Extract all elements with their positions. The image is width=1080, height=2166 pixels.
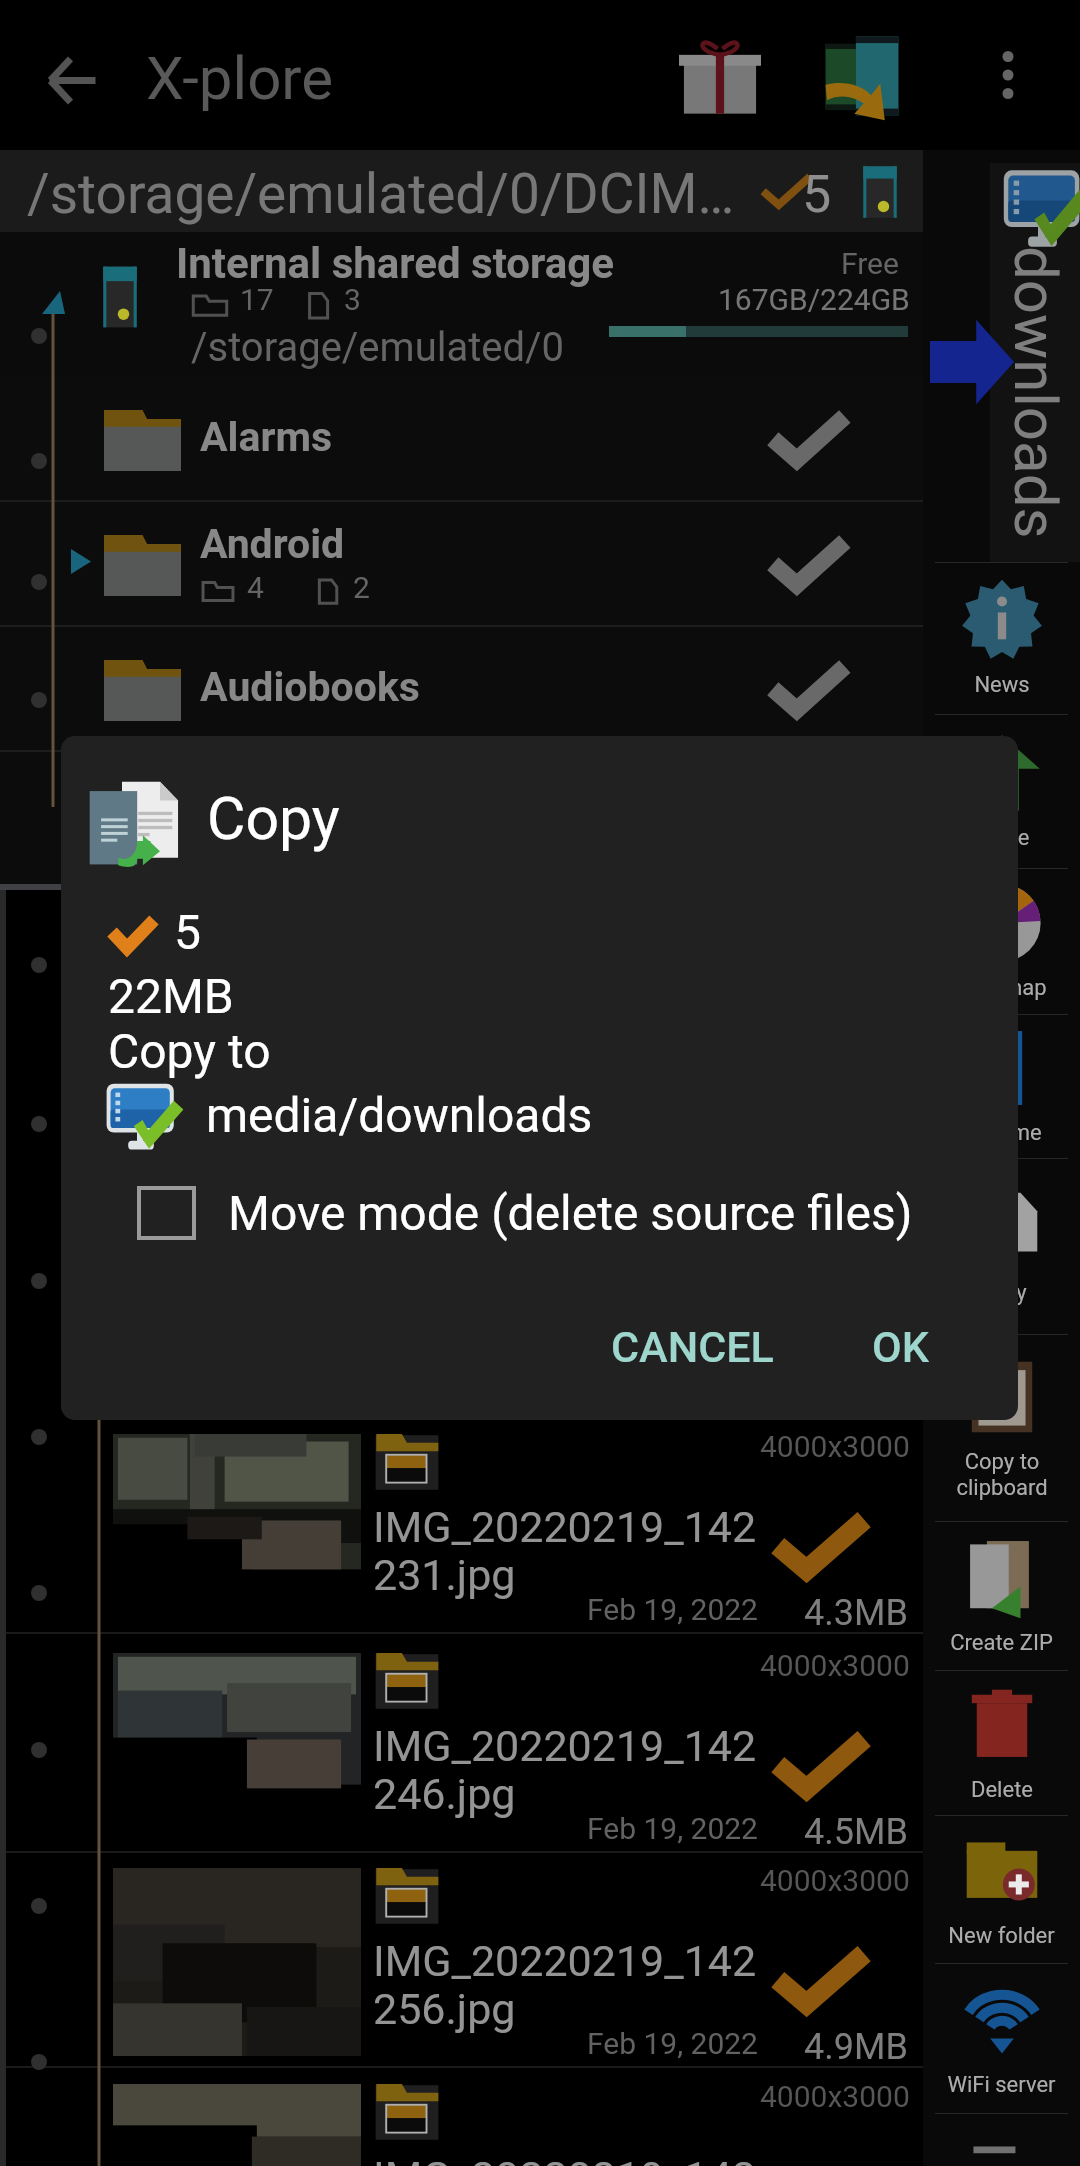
staticText: Move mode (delete source files)	[228, 1185, 913, 1241]
button[interactable]: Copy	[923, 1158, 1080, 1334]
button[interactable]: Create ZIP	[923, 1521, 1080, 1670]
staticText: Audiobooks	[200, 663, 420, 711]
staticText: 5	[802, 164, 832, 225]
button[interactable]: Transfer files	[797, 0, 927, 150]
button[interactable]: Gift	[655, 0, 785, 150]
button[interactable]: CANCEL	[581, 1300, 804, 1394]
button[interactable]: Android	[0, 502, 925, 627]
staticText: News	[974, 672, 1030, 698]
staticText: 5	[174, 904, 201, 960]
staticText: downloads	[1001, 246, 1071, 539]
button[interactable]: More options	[948, 0, 1068, 150]
button[interactable]: Back	[10, 5, 134, 155]
button[interactable]: Move mode (delete source files)	[131, 1179, 919, 1247]
staticText: Feb 19, 2022	[587, 1592, 758, 1627]
staticText: IMG_20220219_142	[373, 1502, 757, 1552]
button[interactable]: Audiobooks	[0, 627, 925, 752]
staticText: X-plore	[146, 43, 333, 113]
button[interactable]: WiFi server	[923, 1963, 1080, 2113]
staticText: 22MB	[108, 968, 234, 1024]
button[interactable]: Rename	[923, 1014, 1080, 1158]
staticText: 256.jpg	[373, 1984, 516, 2034]
staticText: 2	[353, 570, 370, 605]
staticText: Heatmap	[956, 975, 1047, 1001]
button[interactable]: 4000x3000	[0, 2071, 925, 2166]
staticText: 4000x3000	[760, 1429, 910, 1464]
button[interactable]: Share	[923, 714, 1080, 868]
button[interactable]: Heatmap	[923, 868, 1080, 1014]
button[interactable]: Internal shared storage	[0, 232, 925, 377]
staticText: media/downloads	[206, 1087, 593, 1143]
staticText: 17	[240, 282, 274, 317]
staticText: Feb 19, 2022	[587, 2026, 758, 2061]
staticText: Alarms	[200, 413, 333, 461]
staticText: /storage/emulated/0/DCIM…	[27, 162, 735, 226]
button[interactable]: 4000x3000	[0, 1421, 925, 1634]
staticText: Copy to	[108, 1023, 271, 1079]
button[interactable]: 4000x3000	[0, 1855, 925, 2068]
button[interactable]: Delete	[923, 1670, 1080, 1815]
staticText: WiFi server	[947, 2072, 1056, 2098]
button[interactable]: downloads	[990, 163, 1080, 562]
staticText: 231.jpg	[373, 1550, 516, 1600]
staticText: Create ZIP	[950, 1630, 1053, 1656]
staticText: Copy	[207, 784, 340, 853]
staticText: Internal shared storage	[176, 239, 614, 288]
staticText: IMG_20220219_142	[373, 1936, 757, 1986]
staticText: IMG_20220219_142	[373, 1721, 757, 1771]
staticText: IMG_20220219_143	[373, 2152, 757, 2166]
button[interactable]: Copy to clipboard	[923, 1334, 1080, 1521]
button[interactable]: 4000x3000	[0, 1640, 925, 1853]
staticText: Share	[973, 825, 1030, 851]
button[interactable]: Sort	[923, 2113, 1080, 2166]
staticText: Copy to clipboard	[956, 1449, 1048, 1501]
staticText: 4000x3000	[760, 2079, 910, 2114]
staticText: Copy	[977, 1280, 1027, 1306]
staticText: 246.jpg	[373, 1769, 516, 1819]
staticText: CANCEL	[611, 1322, 774, 1372]
staticText: Android	[200, 520, 345, 568]
staticText: 4.9MB	[804, 2026, 908, 2068]
button[interactable]: Alarms	[0, 377, 925, 502]
staticText: 4000x3000	[760, 1648, 910, 1683]
staticText: 167GB/224GB	[718, 282, 910, 317]
button[interactable]: New folder	[923, 1815, 1080, 1963]
staticText: Feb 19, 2022	[587, 1811, 758, 1846]
staticText: 4.3MB	[804, 1592, 908, 1634]
staticText: /storage/emulated/0	[191, 324, 565, 371]
staticText: 4	[247, 570, 264, 605]
staticText: New folder	[948, 1923, 1055, 1949]
staticText: OK	[872, 1322, 929, 1372]
staticText: Delete	[971, 1777, 1033, 1803]
staticText: Rename	[961, 1120, 1042, 1146]
staticText: Free	[841, 246, 899, 281]
button[interactable]: /storage/emulated/0/DCIM…	[0, 150, 925, 232]
staticText: 4000x3000	[760, 1863, 910, 1898]
button[interactable]: OK	[842, 1300, 959, 1394]
button[interactable]: News	[923, 562, 1080, 714]
staticText: 4.5MB	[804, 1811, 908, 1853]
staticText: 3	[344, 282, 361, 317]
